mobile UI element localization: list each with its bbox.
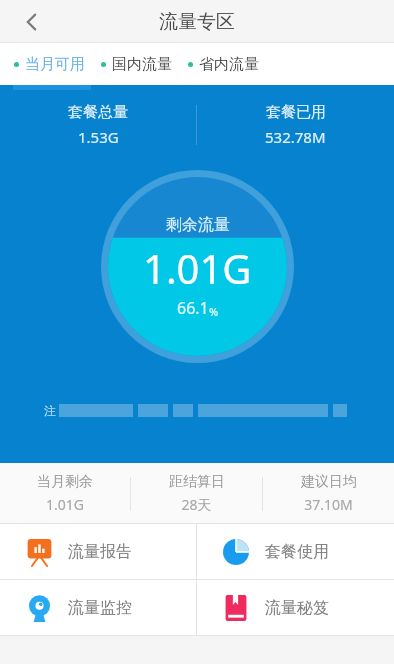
staticText: 流量监控 (68, 598, 132, 618)
staticText: 国内流量 (112, 55, 172, 74)
button[interactable]: 流量秘笈 (197, 580, 394, 635)
staticText: 建议日均 (301, 473, 357, 491)
staticText: 当月可用 (25, 55, 85, 74)
staticText: 当月剩余 (37, 473, 93, 491)
button[interactable]: 当月可用 (6, 49, 93, 80)
staticText: 1.01G (143, 241, 252, 295)
staticText: 注 (44, 403, 56, 418)
staticText: 28天 (181, 495, 212, 514)
button[interactable]: Back (10, 0, 54, 43)
staticText: 距结算日 (169, 473, 225, 491)
button[interactable]: 流量报告 (0, 524, 196, 579)
button[interactable]: 流量监控 (0, 580, 196, 635)
staticText: 66.1 (177, 297, 209, 319)
staticText: 流量秘笈 (265, 598, 329, 618)
staticText: 流量报告 (68, 542, 132, 562)
staticText: 532.78M (265, 127, 326, 147)
staticText: 套餐已用 (266, 103, 326, 122)
staticText: 1.01G (46, 495, 84, 514)
staticText: 37.10M (304, 495, 353, 514)
staticText: 套餐总量 (68, 103, 128, 122)
button[interactable]: 省内流量 (180, 49, 267, 80)
button[interactable]: 国内流量 (93, 49, 180, 80)
staticText: 流量专区 (159, 10, 235, 34)
staticText: 省内流量 (199, 55, 259, 74)
staticText: 1.53G (78, 127, 119, 147)
staticText: % (209, 304, 219, 319)
staticText: 剩余流量 (166, 215, 230, 235)
button[interactable]: 套餐使用 (197, 524, 394, 579)
staticText: 套餐使用 (265, 542, 329, 562)
